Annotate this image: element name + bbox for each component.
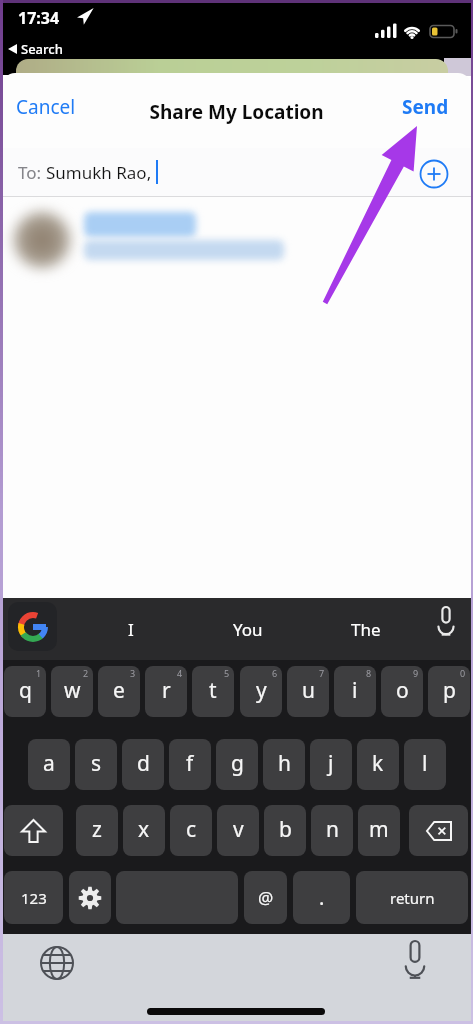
staticText: 17:34 [18,7,60,29]
staticText: I [128,618,134,641]
staticText: You [233,618,263,641]
staticText: 4 [177,667,183,679]
staticText: g [231,749,244,778]
staticText: y [256,676,267,705]
button[interactable]: n [311,805,353,856]
staticText: k [372,749,384,778]
staticText: n [326,815,339,844]
button[interactable] [38,944,76,982]
staticText: m [369,815,389,844]
button[interactable]: o [381,666,423,717]
button[interactable] [8,602,57,651]
staticText: d [137,749,150,778]
button[interactable]: d [122,739,164,790]
button[interactable]: @ [244,871,287,924]
staticText: u [302,676,315,705]
staticText: 0 [460,667,466,679]
button[interactable]: You [213,600,283,658]
staticText: e [113,676,125,705]
staticText: 7 [319,667,325,679]
button[interactable]: j [310,739,352,790]
button[interactable] [418,158,450,190]
button[interactable]: q [4,666,46,717]
staticText: x [138,815,150,844]
staticText: c [186,815,197,844]
staticText: 3 [130,667,136,679]
staticText: j [328,749,334,778]
button[interactable]: e [98,666,140,717]
button[interactable]: 123 [4,871,63,924]
staticText: h [278,749,291,778]
staticText: return [390,888,435,908]
staticText: Send [402,94,449,120]
staticText: r [162,676,171,705]
button[interactable]: t [192,666,234,717]
button[interactable]: i [334,666,376,717]
staticText: p [443,676,456,705]
staticText: t [209,676,217,705]
staticText: Search [21,40,63,58]
staticText: Share My Location [0,99,473,125]
button[interactable]: Cancel [16,94,92,126]
button[interactable]: p [428,666,470,717]
staticText: s [91,749,102,778]
staticText: 1 [36,667,42,679]
button[interactable]: h [263,739,305,790]
staticText: Sumukh Rao, [46,161,156,184]
staticText: The [351,618,381,641]
button[interactable]: c [170,805,212,856]
staticText: w [64,676,81,705]
button[interactable]: g [216,739,258,790]
button[interactable]: x [123,805,165,856]
button[interactable]: w [51,666,93,717]
button[interactable]: . [293,871,350,924]
staticText: a [43,749,55,778]
button[interactable]: Send [402,94,462,126]
button[interactable] [69,871,111,924]
button[interactable]: r [145,666,187,717]
staticText: z [92,815,102,844]
staticText: o [396,676,409,705]
staticText: f [186,749,194,778]
button[interactable] [116,871,238,924]
button[interactable]: l [404,739,446,790]
staticText: 2 [83,667,89,679]
staticText: b [279,815,292,844]
staticText: l [422,749,428,778]
staticText: Cancel [16,94,76,120]
button[interactable]: k [357,739,399,790]
button[interactable]: v [217,805,259,856]
button[interactable] [4,805,63,856]
staticText: 6 [272,667,278,679]
staticText: q [19,676,32,705]
staticText: i [352,676,358,705]
button[interactable]: s [75,739,117,790]
staticText: 8 [366,667,372,679]
button[interactable]: I [96,600,166,658]
button[interactable]: The [331,600,401,658]
button[interactable]: y [240,666,282,717]
staticText: 5 [224,667,230,679]
staticText: . [319,884,325,911]
staticText: 123 [21,888,47,908]
button[interactable]: z [76,805,118,856]
button[interactable]: b [264,805,306,856]
button[interactable]: f [169,739,211,790]
button[interactable]: m [358,805,400,856]
button[interactable] [404,941,426,981]
staticText: v [233,815,244,844]
staticText: @ [258,886,274,909]
staticText: 9 [413,667,419,679]
staticText: To: [18,161,46,184]
button[interactable] [409,805,468,856]
button[interactable]: a [28,739,70,790]
button[interactable]: return [356,871,468,924]
button[interactable]: u [287,666,329,717]
